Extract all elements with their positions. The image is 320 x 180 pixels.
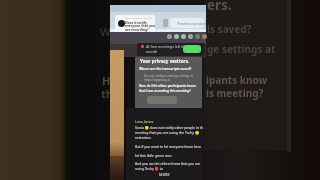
staticText: th xyxy=(101,86,113,101)
button[interactable]: MORE xyxy=(159,172,170,177)
staticText: How do I let other participants know tha… xyxy=(139,84,201,93)
button[interactable]: Toolbar action xyxy=(181,34,186,39)
staticText: is meeting? xyxy=(206,86,320,100)
button[interactable]: Toolbar action xyxy=(202,34,207,39)
staticText: AI free meetings left this month xyxy=(146,44,196,54)
staticText: ipants know xyxy=(206,73,320,87)
staticText: Does it notify everyone that you are rec… xyxy=(125,20,155,32)
staticText: W xyxy=(100,24,112,39)
staticText: Luna James xyxy=(135,119,175,124)
button[interactable]: Toolbar action xyxy=(174,34,179,39)
staticText: Preview a project xyxy=(177,21,207,26)
staticText: H xyxy=(102,73,112,88)
staticText: Inbox · COMMENT · GENERAL xyxy=(125,17,155,20)
button[interactable]: Inbox · COMMENT · GENERAL xyxy=(115,15,155,37)
staticText: You can configure storage settings at ht… xyxy=(144,74,196,82)
staticText: Where are the transcripts saved? xyxy=(139,67,197,71)
staticText: MORE xyxy=(159,172,170,177)
staticText: Your privacy matters. xyxy=(140,58,198,64)
staticText: And you can let others know that you are… xyxy=(135,161,203,171)
staticText: ers. xyxy=(207,0,320,14)
staticText: But if you want to let everyone know her… xyxy=(135,144,203,149)
button[interactable]: Toolbar action xyxy=(188,34,193,39)
button[interactable]: Toolbar action xyxy=(195,34,200,39)
staticText: is saved? xyxy=(207,22,320,36)
staticText: hit this little green icon xyxy=(135,153,203,158)
button[interactable]: Upgrade xyxy=(183,45,201,53)
staticText: ge settings at xyxy=(207,42,320,56)
button[interactable]: Toolbar action xyxy=(167,34,172,39)
staticText: Sonia 🟡 does not notify other people in … xyxy=(135,125,203,140)
